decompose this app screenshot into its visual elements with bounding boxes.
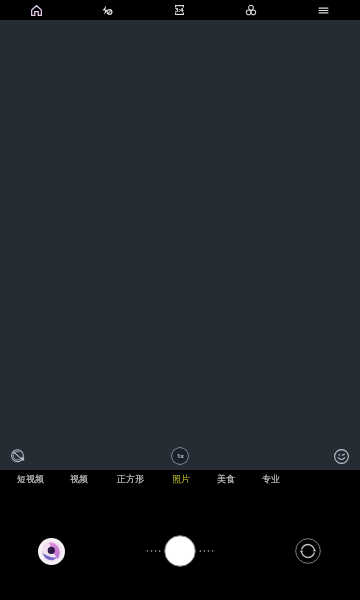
staticText: 照片 bbox=[172, 473, 190, 484]
staticText: 短视频 bbox=[17, 473, 44, 484]
button[interactable]: Blur off bbox=[1, 439, 35, 473]
staticText: 视频 bbox=[70, 473, 88, 484]
button[interactable]: Beauty bbox=[324, 439, 358, 473]
button[interactable]: 专业 bbox=[247, 464, 295, 492]
button[interactable]: Color filters bbox=[237, 0, 265, 20]
staticText: 美食 bbox=[217, 473, 235, 484]
staticText: 专业 bbox=[262, 473, 280, 484]
staticText: 3:4 bbox=[175, 6, 184, 14]
button[interactable]: 美食 bbox=[202, 464, 250, 492]
button[interactable]: AI scene bbox=[22, 0, 50, 20]
button[interactable]: Aspect ratio 3 to 4 bbox=[165, 0, 193, 20]
button[interactable]: Shutter bbox=[157, 528, 203, 574]
button[interactable]: Switch camera bbox=[290, 533, 326, 569]
staticText: 1x bbox=[177, 452, 184, 460]
button[interactable]: Gallery bbox=[33, 533, 69, 569]
button[interactable]: 照片 bbox=[157, 464, 205, 492]
button[interactable]: Flash off bbox=[93, 0, 121, 20]
button[interactable]: Menu bbox=[309, 0, 337, 20]
button[interactable]: 正方形 bbox=[106, 464, 154, 492]
button[interactable]: 短视频 bbox=[6, 464, 54, 492]
staticText: 正方形 bbox=[117, 473, 144, 484]
button[interactable]: 视频 bbox=[55, 464, 103, 492]
button[interactable]: Zoom one times bbox=[163, 439, 197, 473]
